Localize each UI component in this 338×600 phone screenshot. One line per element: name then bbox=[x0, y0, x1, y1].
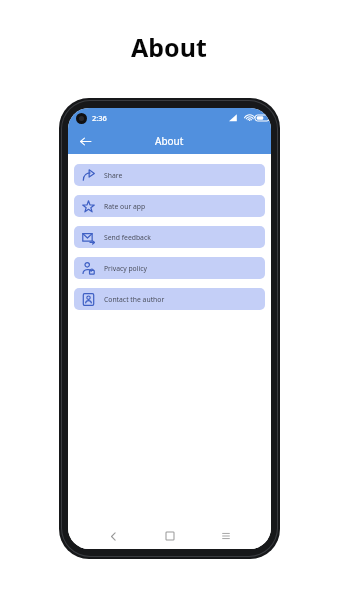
staticText: About bbox=[131, 30, 207, 64]
staticText: Share bbox=[104, 171, 123, 180]
button[interactable]: Privacy policy bbox=[74, 257, 265, 279]
button[interactable]: Send feedback bbox=[74, 226, 265, 248]
button[interactable]: Back bbox=[101, 524, 125, 548]
button[interactable]: Home bbox=[158, 524, 182, 548]
staticText: Send feedback bbox=[104, 233, 151, 242]
button[interactable]: Recents bbox=[214, 524, 238, 548]
button[interactable]: Rate our app bbox=[74, 195, 265, 217]
button[interactable]: Share bbox=[74, 164, 265, 186]
staticText: Rate our app bbox=[104, 202, 146, 211]
staticText: Privacy policy bbox=[104, 264, 147, 273]
button[interactable]: Back bbox=[72, 128, 98, 154]
staticText: 2:36 bbox=[92, 113, 107, 123]
button[interactable]: Contact the author bbox=[74, 288, 265, 310]
staticText: About bbox=[155, 134, 184, 148]
staticText: Contact the author bbox=[104, 295, 165, 304]
